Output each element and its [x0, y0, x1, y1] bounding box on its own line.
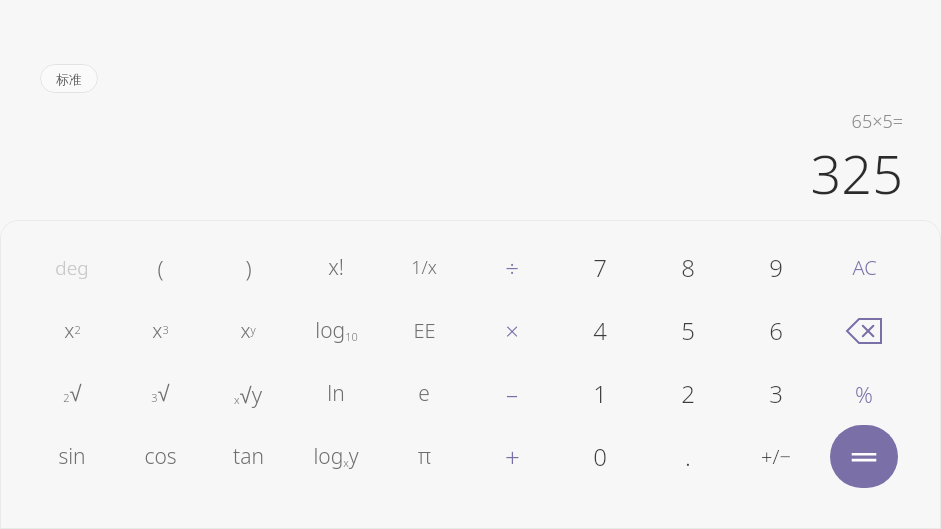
button[interactable]: e — [380, 362, 468, 425]
button[interactable]: 4 — [556, 299, 644, 362]
staticText: 9 — [769, 251, 783, 284]
staticText: ) — [245, 253, 252, 283]
staticText: xy — [240, 317, 256, 344]
staticText: AC — [852, 254, 877, 281]
staticText: 3√ — [151, 381, 170, 406]
staticText: – — [506, 377, 518, 410]
staticText: 0 — [593, 440, 607, 473]
button[interactable]: Equals — [830, 425, 898, 488]
button[interactable]: cos — [116, 425, 204, 488]
button[interactable]: 5 — [644, 299, 732, 362]
button[interactable]: 0 — [556, 425, 644, 488]
staticText: EE — [413, 317, 436, 344]
staticText: 2√ — [63, 381, 82, 406]
button[interactable]: +/− — [732, 425, 820, 488]
button[interactable]: x3 — [116, 299, 204, 362]
button[interactable]: % — [820, 362, 908, 425]
staticText: ÷ — [505, 251, 519, 284]
button[interactable]: tan — [204, 425, 292, 488]
staticText: ( — [157, 253, 164, 283]
staticText: 1/x — [411, 255, 437, 280]
staticText: x√y — [234, 379, 262, 409]
staticText: x! — [328, 253, 344, 282]
button[interactable]: EE — [380, 299, 468, 362]
button[interactable]: logxy — [292, 425, 380, 488]
staticText: 1 — [593, 377, 607, 410]
button[interactable]: × — [468, 299, 556, 362]
staticText: . — [685, 440, 691, 473]
staticText: 3 — [769, 377, 783, 410]
button[interactable]: 标准 — [40, 64, 98, 93]
button[interactable]: deg — [28, 236, 116, 299]
staticText: 4 — [593, 314, 607, 347]
button[interactable]: xy — [204, 299, 292, 362]
button[interactable]: sin — [28, 425, 116, 488]
staticText: % — [855, 379, 873, 409]
staticText: 5 — [681, 314, 695, 347]
button[interactable]: ÷ — [468, 236, 556, 299]
button[interactable]: 2√ — [28, 362, 116, 425]
staticText: logxy — [313, 442, 359, 471]
staticText: cos — [144, 442, 177, 471]
button[interactable]: 2 — [644, 362, 732, 425]
staticText: x3 — [152, 317, 169, 344]
button[interactable]: π — [380, 425, 468, 488]
staticText: log10 — [315, 316, 358, 345]
staticText: e — [418, 379, 430, 408]
button[interactable]: + — [468, 425, 556, 488]
staticText: + — [505, 439, 520, 474]
button[interactable]: 8 — [644, 236, 732, 299]
button[interactable]: x! — [292, 236, 380, 299]
button[interactable]: x2 — [28, 299, 116, 362]
staticText: sin — [58, 442, 86, 471]
button[interactable]: 9 — [732, 236, 820, 299]
staticText: deg — [55, 255, 89, 281]
button[interactable]: log10 — [292, 299, 380, 362]
button[interactable]: 3 — [732, 362, 820, 425]
button[interactable]: – — [468, 362, 556, 425]
staticText: 325 — [810, 136, 903, 202]
staticText: 7 — [593, 251, 607, 284]
staticText: x2 — [64, 317, 81, 344]
button[interactable]: ( — [116, 236, 204, 299]
button[interactable]: 1/x — [380, 236, 468, 299]
staticText: ln — [327, 379, 345, 408]
staticText: 8 — [681, 251, 695, 284]
staticText: 6 — [769, 314, 783, 347]
staticText: × — [505, 314, 519, 347]
button[interactable]: AC — [820, 236, 908, 299]
staticText: tan — [233, 442, 264, 471]
staticText: π — [418, 442, 431, 471]
button[interactable]: ) — [204, 236, 292, 299]
button[interactable]: 7 — [556, 236, 644, 299]
button[interactable]: Backspace — [820, 299, 908, 362]
button[interactable]: 1 — [556, 362, 644, 425]
button[interactable]: 3√ — [116, 362, 204, 425]
button[interactable]: 6 — [732, 299, 820, 362]
button[interactable]: ln — [292, 362, 380, 425]
button[interactable]: . — [644, 425, 732, 488]
staticText: 2 — [681, 377, 695, 410]
button[interactable]: x√y — [204, 362, 292, 425]
staticText: +/− — [761, 443, 791, 470]
staticText: 65×5= — [851, 109, 903, 134]
staticText: 标准 — [56, 71, 82, 87]
